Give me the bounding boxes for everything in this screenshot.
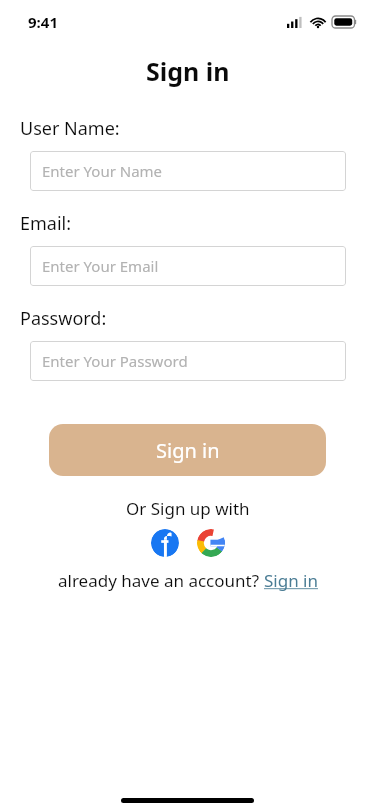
staticText: Or Sign up with xyxy=(126,497,250,520)
staticText: User Name: xyxy=(20,116,120,141)
staticText: Enter Your Email xyxy=(42,256,159,276)
staticText: Enter Your Name xyxy=(42,161,163,181)
staticText: 9:41 xyxy=(28,12,58,32)
staticText: Sign in xyxy=(146,54,230,88)
button[interactable]: Enter Your Password xyxy=(30,341,346,381)
staticText: already have an account? xyxy=(58,569,264,592)
button[interactable]: Enter Your Name xyxy=(30,151,346,191)
button[interactable]: Sign up with Google xyxy=(197,529,225,557)
staticText: Sign in xyxy=(156,437,220,464)
button[interactable]: Sign in xyxy=(49,424,326,476)
staticText: Enter Your Password xyxy=(42,351,188,371)
button[interactable]: Sign in xyxy=(264,569,318,592)
staticText: Sign in xyxy=(264,569,318,592)
staticText: Password: xyxy=(20,306,107,331)
button[interactable]: Enter Your Email xyxy=(30,246,346,286)
button[interactable]: Sign up with Facebook xyxy=(151,529,179,557)
staticText: Email: xyxy=(20,211,72,236)
